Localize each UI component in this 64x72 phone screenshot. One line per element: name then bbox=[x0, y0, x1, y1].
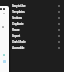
button[interactable]: Sections bbox=[0, 15, 64, 21]
button[interactable]: Dark Mode bbox=[0, 39, 64, 45]
staticText: Export bbox=[12, 34, 20, 38]
staticText: Duplicate bbox=[12, 22, 24, 26]
staticText: Easy to Use bbox=[12, 4, 26, 8]
staticText: Accessible bbox=[12, 46, 24, 50]
staticText: Templates bbox=[12, 10, 25, 14]
staticText: Sections bbox=[12, 16, 22, 20]
button[interactable]: Accessible bbox=[0, 45, 64, 51]
button[interactable]: Templates bbox=[0, 9, 64, 15]
button[interactable]: Reuse bbox=[0, 27, 64, 33]
button[interactable]: Duplicate bbox=[0, 21, 64, 27]
button[interactable]: Export bbox=[0, 33, 64, 39]
staticText: Dark Mode bbox=[12, 40, 26, 44]
button[interactable]: Easy to Use bbox=[0, 3, 64, 9]
staticText: Reuse bbox=[12, 28, 20, 32]
